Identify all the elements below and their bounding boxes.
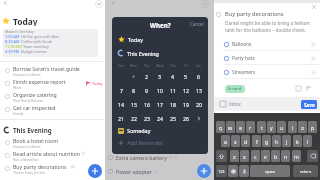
button[interactable]: m [292, 150, 301, 162]
button[interactable]: z [230, 150, 239, 162]
button[interactable]: Save [301, 100, 317, 109]
button[interactable]: Get car inspected [0, 103, 105, 116]
button[interactable]: t [257, 121, 266, 133]
button[interactable]: w [226, 121, 235, 133]
button[interactable]: 24 [153, 111, 166, 125]
staticText: 9 [145, 87, 148, 94]
button[interactable]: 4 [166, 69, 179, 83]
button[interactable]: Book a hotel room [0, 136, 105, 149]
button[interactable]: Back [1, 0, 9, 7]
button[interactable]: g [262, 135, 271, 147]
button[interactable]: y [267, 121, 276, 133]
staticText: Today [92, 81, 103, 86]
staticText: Balloons [232, 41, 252, 48]
button[interactable]: 11 [166, 83, 179, 97]
staticText: 13 [196, 87, 202, 94]
button[interactable]: Party hats [214, 51, 320, 65]
button[interactable]: i [288, 121, 297, 133]
button[interactable]: Streamers [214, 65, 320, 79]
button[interactable]: 14 [115, 97, 127, 111]
button[interactable]: Errand [225, 85, 245, 93]
button[interactable]: j [282, 135, 291, 147]
button[interactable]: Add Reminder [112, 137, 208, 148]
button[interactable]: Buy party decorations [0, 162, 105, 175]
button[interactable]: Close [311, 4, 317, 10]
button[interactable]: This Evening [112, 47, 208, 59]
button[interactable] [192, 111, 205, 125]
button[interactable]: r [246, 121, 255, 133]
button[interactable]: 6 [192, 69, 205, 83]
staticText: When? [150, 21, 171, 29]
button[interactable]: 10 [153, 83, 166, 97]
staticText: 21 [118, 115, 124, 122]
button[interactable]: Cancel [190, 21, 204, 27]
staticText: Fri [184, 64, 188, 68]
button[interactable]: 8 [127, 83, 140, 97]
staticText: x [243, 153, 246, 160]
button[interactable]: 9 [140, 83, 153, 97]
button[interactable]: 13 [192, 83, 205, 97]
button[interactable]: x [240, 150, 249, 162]
button[interactable]: Balloons [214, 37, 320, 51]
button[interactable] [216, 150, 227, 162]
button[interactable]: 12 [179, 83, 192, 97]
button[interactable]: e [236, 121, 245, 133]
button[interactable]: 7 [115, 83, 127, 97]
staticText: m [294, 153, 299, 160]
button[interactable]: Read article about nutrition [0, 149, 105, 162]
button[interactable]: 19 [179, 97, 192, 111]
button[interactable]: f [252, 135, 261, 147]
button[interactable]: Collapse [94, 0, 103, 8]
staticText: 7:00 AM [5, 34, 20, 39]
button[interactable]: p [308, 121, 317, 133]
button[interactable]: v [261, 150, 270, 162]
button[interactable] [307, 150, 318, 162]
button[interactable] [228, 165, 238, 177]
button[interactable]: 21 [115, 111, 127, 125]
button[interactable]: 2 [140, 69, 153, 83]
staticText: 8:30 AM [5, 39, 20, 44]
button[interactable]: 26 [179, 111, 192, 125]
staticText: tank for the balloons – double check. [225, 27, 306, 33]
button[interactable]: n [281, 150, 290, 162]
button[interactable]: 20 [192, 97, 205, 111]
button[interactable]: a [221, 135, 230, 147]
button[interactable]: Today [112, 33, 208, 45]
button[interactable]: Someday [112, 125, 208, 136]
button[interactable]: h [272, 135, 281, 147]
button[interactable]: s [231, 135, 240, 147]
button[interactable]: 22 [127, 111, 140, 125]
button[interactable]: return [293, 165, 318, 177]
button[interactable] [239, 165, 249, 177]
button[interactable]: 123 [216, 165, 227, 177]
button[interactable]: 25 [166, 111, 179, 125]
button[interactable]: Organize catering [0, 90, 105, 103]
button[interactable]: l [303, 135, 312, 147]
staticText: w [228, 124, 233, 131]
button[interactable]: c [251, 150, 260, 162]
button[interactable]: Finish expense report [0, 77, 105, 90]
button[interactable]: 23 [140, 111, 153, 125]
button[interactable]: o [298, 121, 307, 133]
button[interactable]: 16 [140, 97, 153, 111]
button[interactable] [127, 69, 140, 83]
button[interactable]: 15 [127, 97, 140, 111]
button[interactable]: b [271, 150, 280, 162]
button[interactable]: k [293, 135, 302, 147]
button[interactable]: Add task [197, 164, 211, 178]
button[interactable]: q [216, 121, 225, 133]
staticText: c [254, 153, 257, 160]
staticText: Borrow Sarah's travel guide [13, 65, 80, 72]
button[interactable]: 17 [153, 97, 166, 111]
button[interactable]: space [250, 165, 290, 177]
staticText: Today [128, 36, 143, 43]
button[interactable]: Add task [88, 164, 102, 178]
button[interactable]: Borrow Sarah's travel guide [0, 64, 105, 77]
staticText: Budget review [21, 49, 47, 54]
button[interactable]: d [241, 135, 250, 147]
button[interactable]: 18 [166, 97, 179, 111]
button[interactable]: 5 [179, 69, 192, 83]
button[interactable]: 3 [153, 69, 166, 83]
button[interactable]: u [277, 121, 286, 133]
